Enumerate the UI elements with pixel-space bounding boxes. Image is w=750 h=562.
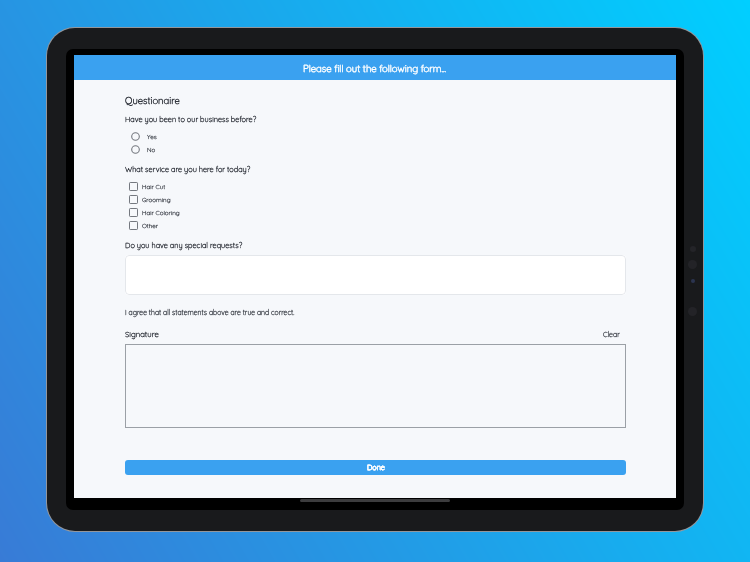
staticText: Other bbox=[142, 222, 159, 230]
button[interactable]: Clear bbox=[603, 330, 626, 339]
staticText: Hair Cut bbox=[142, 183, 166, 191]
staticText: Have you been to our business before? bbox=[125, 115, 257, 124]
staticText: Questionaire bbox=[125, 94, 180, 106]
staticText: No bbox=[147, 146, 156, 154]
staticText: Questionaire bbox=[125, 94, 180, 106]
staticText: Do you have any special requests? bbox=[125, 241, 243, 250]
staticText: I agree that all statements above are tr… bbox=[125, 308, 295, 317]
button[interactable]: Hair Cut bbox=[125, 180, 626, 193]
staticText: Hair Coloring bbox=[142, 209, 180, 217]
staticText: Do you have any special requests? bbox=[125, 241, 243, 250]
staticText: Hair Cut bbox=[142, 183, 166, 191]
button[interactable]: Grooming bbox=[125, 193, 626, 206]
staticText: Grooming bbox=[142, 196, 171, 204]
button[interactable]: Done bbox=[125, 460, 626, 475]
staticText: Clear bbox=[603, 330, 620, 339]
staticText: Yes bbox=[147, 133, 157, 141]
staticText: Done bbox=[367, 463, 385, 472]
button[interactable]: Yes bbox=[125, 130, 626, 143]
staticText: Grooming bbox=[142, 196, 171, 204]
staticText: No bbox=[147, 146, 156, 154]
staticText: Done bbox=[367, 463, 385, 472]
staticText: Clear bbox=[603, 330, 620, 339]
staticText: Other bbox=[142, 222, 159, 230]
button[interactable]: Please fill out the following form... bbox=[74, 55, 676, 80]
button[interactable]: Hair Coloring bbox=[125, 206, 626, 219]
button[interactable]: Signature pad bbox=[125, 344, 626, 428]
staticText: Hair Coloring bbox=[142, 209, 180, 217]
staticText: Signature bbox=[125, 329, 159, 339]
staticText: Signature bbox=[125, 329, 159, 339]
button[interactable]: Special requests text field bbox=[125, 255, 626, 295]
staticText: What service are you here for today? bbox=[125, 165, 251, 174]
staticText: I agree that all statements above are tr… bbox=[125, 308, 295, 317]
button[interactable]: No bbox=[125, 143, 626, 156]
staticText: Please fill out the following form... bbox=[303, 62, 447, 74]
staticText: Yes bbox=[147, 133, 157, 141]
staticText: What service are you here for today? bbox=[125, 165, 251, 174]
staticText: Have you been to our business before? bbox=[125, 115, 257, 124]
button[interactable]: Other bbox=[125, 219, 626, 232]
